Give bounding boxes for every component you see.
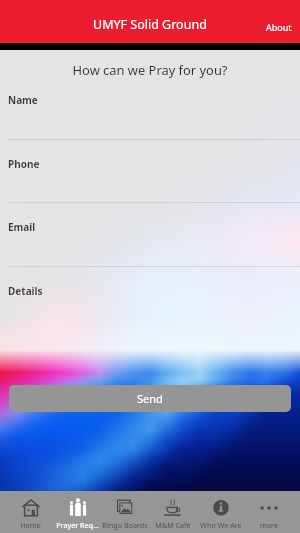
staticText: UMYF Solid Ground [93,16,207,33]
staticText: How can we Pray for you? [0,61,300,79]
staticText: Email [8,220,36,234]
button[interactable]: Send [9,385,291,412]
button[interactable]: Prayer Req... [54,491,101,533]
button[interactable]: Home [7,491,54,533]
staticText: Bingo Boards [102,520,148,530]
staticText: Name [8,93,38,107]
button[interactable]: more [245,491,293,533]
staticText: Phone [8,157,40,171]
staticText: Home [20,520,41,530]
staticText: Details [8,284,43,298]
button[interactable]: About [258,16,300,38]
staticText: About [266,21,292,33]
staticText: Send [137,391,163,406]
button[interactable]: Bingo Boards [101,491,149,533]
staticText: Who We Are [200,520,242,530]
staticText: M&M Cafe [155,520,191,530]
staticText: Prayer Req... [56,520,99,530]
button[interactable]: M&M Cafe [149,491,197,533]
button[interactable]: Who We Are [197,491,245,533]
staticText: more [260,520,278,530]
